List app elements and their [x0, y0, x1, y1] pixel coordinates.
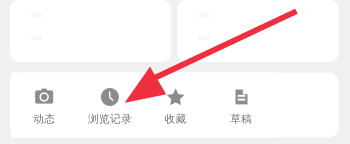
button[interactable]: 动态 [11, 72, 77, 137]
button[interactable] [177, 0, 339, 62]
button[interactable]: 草稿 [208, 72, 274, 137]
staticText: 草稿 [230, 112, 252, 126]
staticText: 收藏 [165, 112, 187, 126]
button[interactable]: 浏览记录 [77, 72, 143, 137]
button[interactable]: 收藏 [143, 72, 208, 137]
staticText: 浏览记录 [88, 112, 132, 126]
staticText: 动态 [33, 112, 55, 126]
